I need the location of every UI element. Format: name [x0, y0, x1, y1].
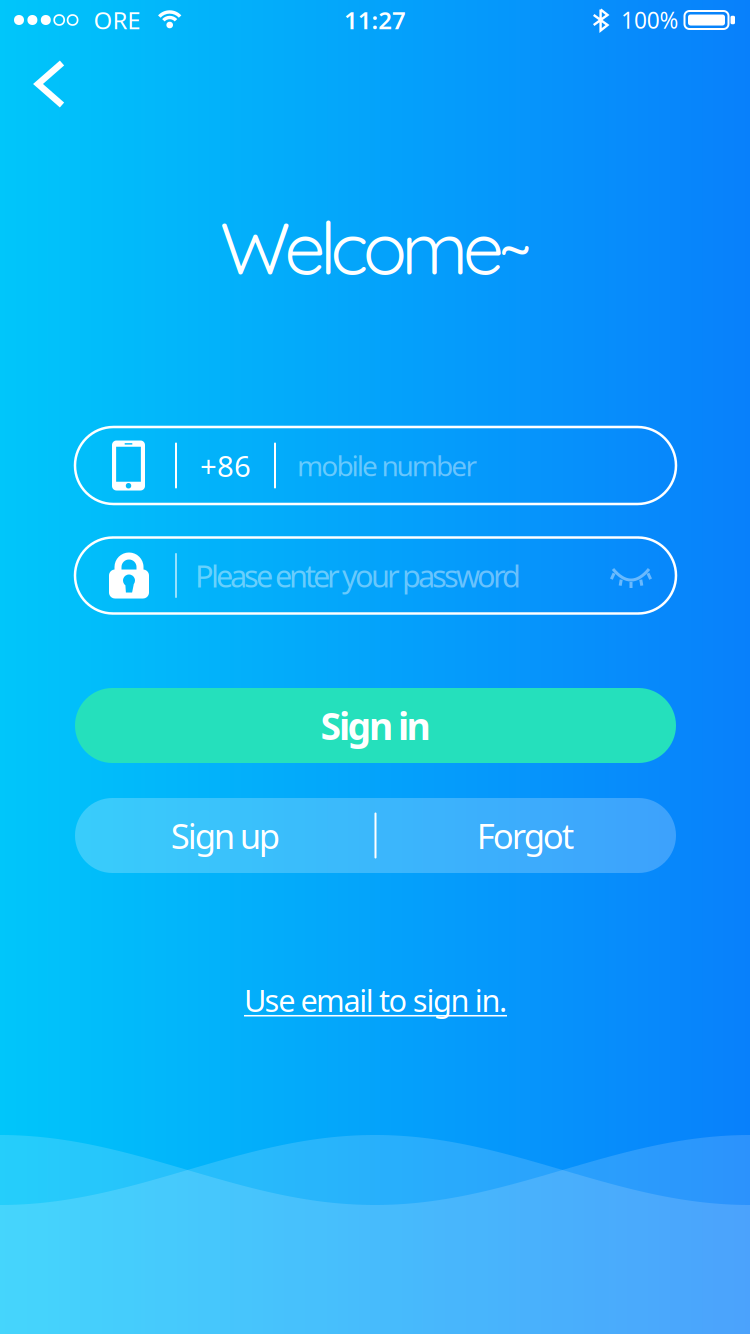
staticText: Welcome~ [220, 201, 532, 293]
button[interactable]: Sign up [75, 798, 375, 873]
staticText: ORE [94, 4, 140, 36]
button[interactable]: Use email to sign in. [232, 968, 519, 1032]
button[interactable]: Please enter your password [75, 537, 676, 613]
staticText: Sign up [171, 812, 280, 858]
button[interactable]: Forgot [375, 798, 676, 873]
staticText: 11:27 [344, 4, 406, 36]
staticText: 100% [621, 5, 678, 35]
staticText: Sign in [320, 701, 430, 750]
button[interactable]: Back [16, 43, 84, 125]
button[interactable]: Sign in [75, 688, 676, 763]
staticText: Forgot [477, 812, 575, 858]
button[interactable]: +86 [75, 427, 676, 504]
staticText: mobile number [297, 447, 477, 484]
staticText: Use email to sign in. [244, 980, 507, 1020]
staticText: +86 [200, 446, 251, 485]
staticText: Please enter your password [195, 555, 521, 596]
